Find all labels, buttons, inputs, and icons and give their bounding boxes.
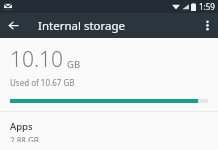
staticText: Used of 10.67 GB <box>10 77 75 88</box>
staticText: Apps <box>10 120 33 133</box>
button[interactable]: More options <box>196 13 218 38</box>
staticText: 2.88 GB <box>10 135 39 142</box>
button[interactable]: 10.10 <box>0 38 218 111</box>
staticText: 10.10 <box>10 45 64 74</box>
button[interactable]: Apps <box>0 112 218 150</box>
button[interactable]: Navigate up <box>0 13 26 38</box>
staticText: Internal storage <box>38 18 196 34</box>
staticText: GB <box>67 58 81 71</box>
staticText: 1:59 <box>199 1 215 12</box>
